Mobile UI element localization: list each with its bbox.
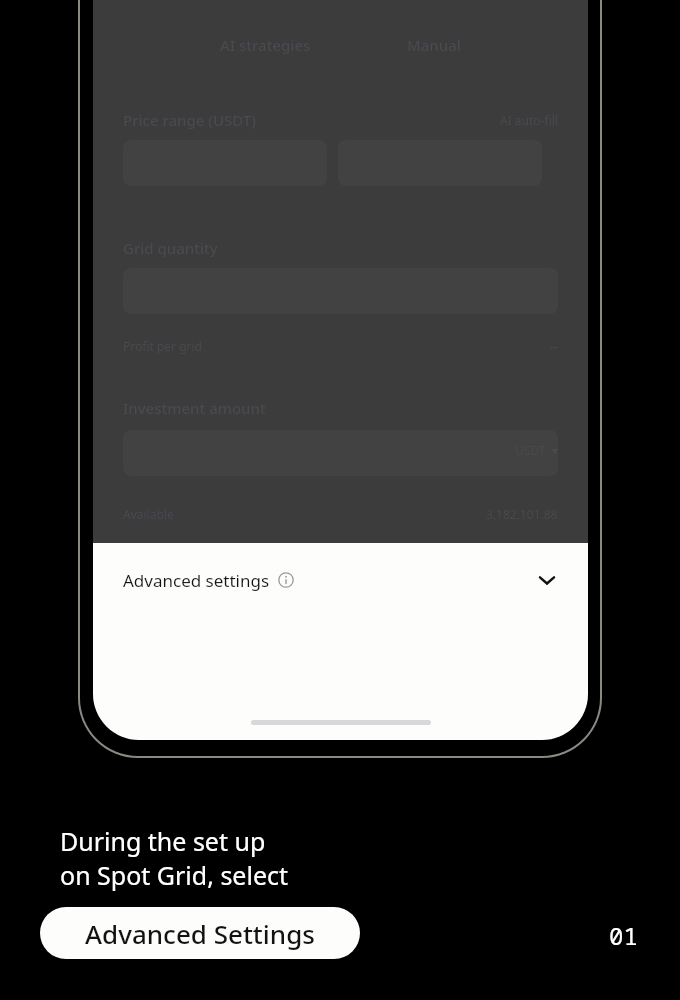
button[interactable]: Advanced Settings <box>40 907 360 959</box>
staticText: USDT ▾ <box>515 442 558 458</box>
staticText: Grid quantity <box>123 238 218 258</box>
staticText: Advanced settings <box>123 569 270 592</box>
staticText: Available <box>123 506 174 522</box>
staticText: -- <box>550 338 558 354</box>
other: Info <box>278 572 294 588</box>
staticText: 3,182,101.88 <box>486 506 558 522</box>
staticText: Price range (USDT) <box>123 110 256 130</box>
staticText: During the set up <box>60 824 266 858</box>
button[interactable]: Advanced settings <box>93 543 588 617</box>
other: Expand advanced settings <box>536 569 558 591</box>
staticText: Advanced Settings <box>85 916 315 951</box>
staticText: Manual <box>407 35 461 55</box>
staticText: on Spot Grid, select <box>60 858 289 892</box>
staticText: Profit per grid <box>123 338 202 354</box>
staticText: AI strategies <box>220 35 311 55</box>
staticText: Investment amount <box>123 398 266 418</box>
staticText: 01 <box>609 919 638 952</box>
staticText: AI auto-fill <box>500 112 558 128</box>
